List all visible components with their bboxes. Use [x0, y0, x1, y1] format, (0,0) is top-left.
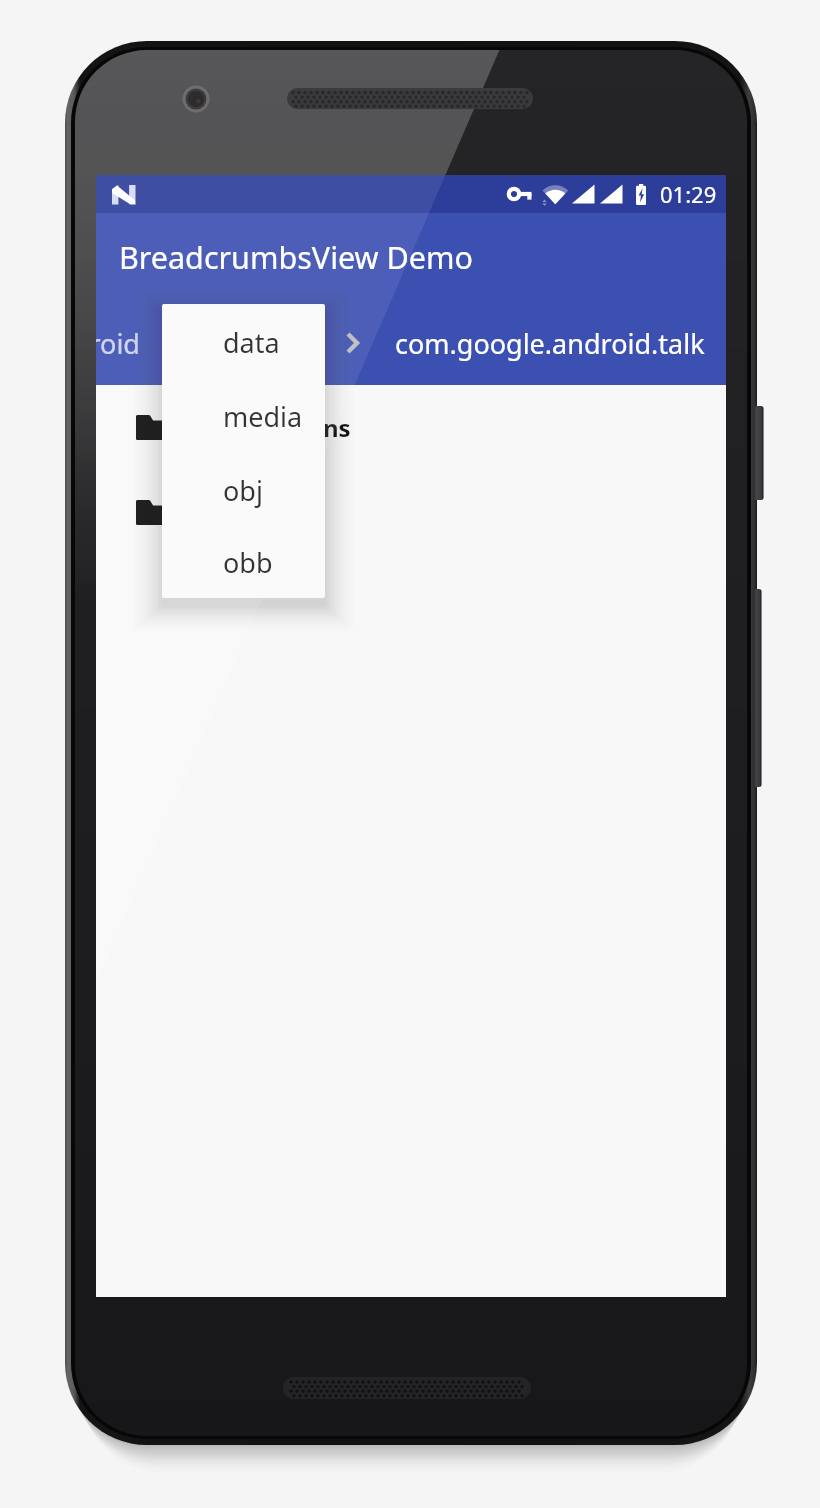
button[interactable]: media [162, 379, 325, 453]
staticText: data [223, 324, 280, 361]
button[interactable]: Notifications [96, 385, 726, 470]
button[interactable]: com.google.android.talk [395, 301, 705, 385]
staticText: Alarms [195, 496, 280, 529]
button[interactable]: Alarms [96, 470, 726, 555]
button[interactable]: obj [162, 453, 325, 527]
staticText: android [96, 325, 140, 362]
staticText: com.google.android.talk [395, 325, 705, 362]
staticText: Notifications [195, 411, 351, 444]
staticText: BreadcrumbsView Demo [119, 236, 473, 278]
staticText: media [223, 398, 303, 435]
staticText: obb [223, 544, 273, 581]
other: Next folder level [342, 331, 366, 355]
staticText: obj [223, 472, 263, 509]
button[interactable]: android [96, 301, 140, 385]
button[interactable]: data [162, 305, 325, 379]
button[interactable]: obb [162, 527, 325, 598]
staticText: 01:29 [660, 179, 717, 209]
